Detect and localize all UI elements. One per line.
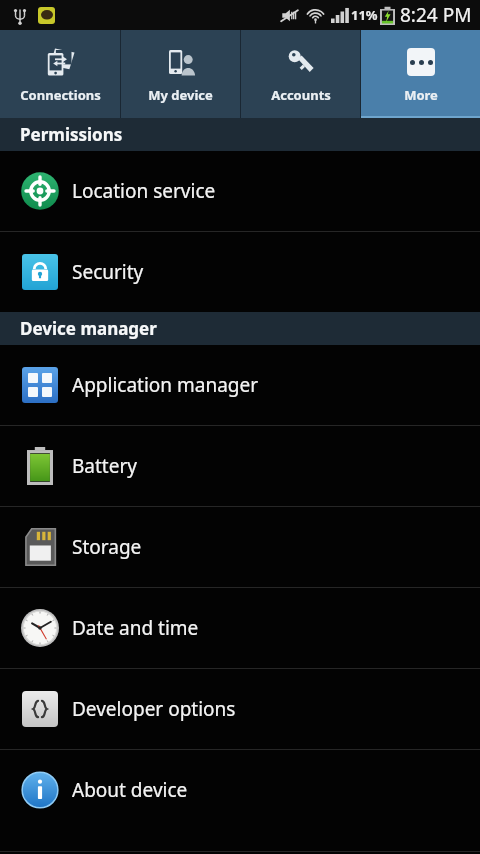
staticText: Battery <box>72 453 137 479</box>
button[interactable]: About device <box>0 750 480 830</box>
staticText: More <box>404 86 438 104</box>
button[interactable]: Security <box>0 232 480 312</box>
staticText: Application manager <box>72 372 259 398</box>
staticText: Accounts <box>271 86 331 104</box>
staticText: My device <box>148 86 213 104</box>
staticText: Date and time <box>72 615 199 641</box>
button[interactable]: Accounts <box>241 30 360 118</box>
button[interactable]: My device <box>121 30 240 118</box>
staticText: Storage <box>72 534 142 560</box>
button[interactable]: Application manager <box>0 345 480 425</box>
button[interactable]: Connections <box>0 30 120 118</box>
staticText: 8:24 PM <box>400 2 472 28</box>
staticText: Developer options <box>72 696 236 722</box>
staticText: Connections <box>20 86 101 104</box>
staticText: 11% <box>351 6 378 24</box>
button[interactable]: Storage <box>0 507 480 587</box>
staticText: Device manager <box>20 317 157 340</box>
button[interactable]: Location service <box>0 151 480 231</box>
staticText: About device <box>72 777 188 803</box>
button[interactable]: Battery <box>0 426 480 506</box>
button[interactable]: More <box>361 30 480 118</box>
staticText: Security <box>72 259 144 285</box>
button[interactable]: Developer options <box>0 669 480 749</box>
staticText: Location service <box>72 178 216 204</box>
button[interactable]: Date and time <box>0 588 480 668</box>
staticText: Permissions <box>20 123 123 146</box>
